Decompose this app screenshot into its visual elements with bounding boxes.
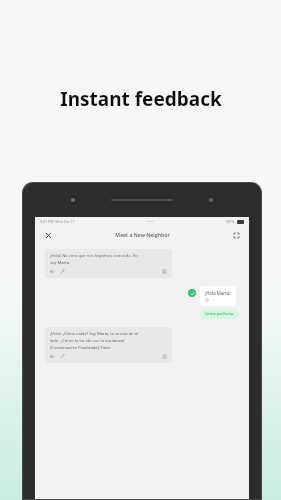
staticText: Instant feedback	[60, 86, 222, 112]
staticText: [Conversación Finalizada]: False	[50, 345, 111, 351]
other: More	[162, 354, 167, 359]
staticText: ¡Hola! No creo que nos hayamos conocido.…	[50, 253, 138, 259]
staticText: soy Marta.	[50, 260, 71, 266]
other: Play audio	[50, 269, 55, 274]
button[interactable]: ¡Hola! No creo que nos hayamos conocido.…	[45, 249, 172, 278]
button[interactable]: Línea perfecta	[200, 309, 239, 319]
other: Translate	[60, 354, 65, 359]
staticText: • • •	[147, 219, 153, 224]
button[interactable]: Close	[42, 229, 54, 241]
staticText: 9:41 PM Wed Oct 11	[40, 219, 75, 224]
staticText: Meet a New Neighbor	[115, 231, 170, 238]
staticText: lado. ¿Cómo te ha ido con la mudanza?	[50, 338, 125, 344]
staticText: Línea perfecta	[205, 311, 234, 317]
staticText: ¡Hola! ¿Cómo estás? Soy María, tu vecina…	[50, 331, 138, 337]
button[interactable]: Expand	[230, 229, 242, 241]
other: Translate	[60, 269, 65, 274]
other: More	[162, 269, 167, 274]
staticText: 100%	[225, 219, 235, 224]
button[interactable]: ¡Hola Marta!	[200, 286, 236, 306]
button[interactable]: ¡Hola! ¿Cómo estás? Soy María, tu vecina…	[45, 327, 172, 363]
other: Approved	[188, 289, 196, 297]
other: Play audio	[50, 354, 55, 359]
staticText: ¡Hola Marta!	[205, 290, 231, 296]
